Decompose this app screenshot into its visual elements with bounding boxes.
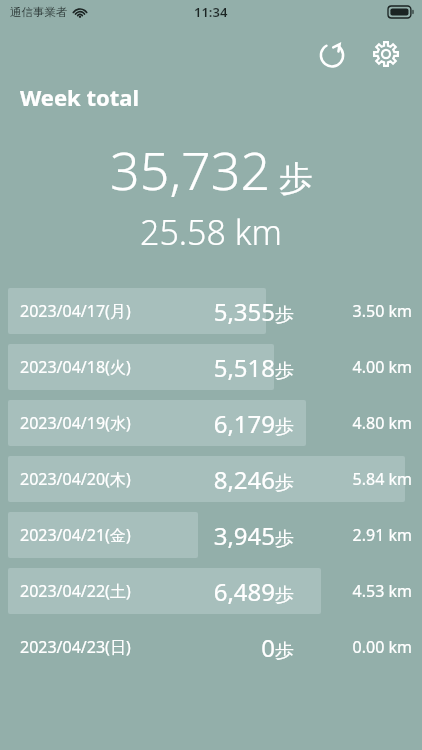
button[interactable]: 2023/04/17(月) [0, 283, 422, 339]
staticText: 2023/04/20(木) [20, 468, 131, 490]
button[interactable]: Refresh [308, 30, 356, 78]
button[interactable]: 2023/04/18(火) [0, 339, 422, 395]
staticText: 2.91 km [352, 524, 412, 546]
staticText: 歩 [275, 583, 294, 607]
button[interactable]: 2023/04/21(金) [0, 507, 422, 563]
staticText: 3.50 km [352, 300, 412, 322]
staticText: 0.00 km [352, 636, 412, 658]
staticText: 11:34 [194, 3, 228, 21]
staticText: 歩 [279, 157, 313, 200]
staticText: 6,179 [213, 407, 275, 440]
staticText: 4.53 km [352, 580, 412, 602]
staticText: 6,489 [213, 575, 275, 608]
button[interactable]: 2023/04/22(土) [0, 563, 422, 619]
staticText: 4.00 km [352, 356, 412, 378]
staticText: 歩 [275, 639, 294, 663]
staticText: 2023/04/23(日) [20, 636, 131, 658]
staticText: 2023/04/21(金) [20, 524, 131, 546]
staticText: 2023/04/17(月) [20, 300, 131, 322]
staticText: 4.80 km [352, 412, 412, 434]
button[interactable]: 2023/04/20(木) [0, 451, 422, 507]
staticText: 歩 [275, 527, 294, 551]
staticText: 5.84 km [352, 468, 412, 490]
staticText: 25.58 km [140, 209, 282, 255]
staticText: 8,246 [213, 463, 275, 496]
button[interactable]: 2023/04/19(水) [0, 395, 422, 451]
staticText: 2023/04/22(土) [20, 580, 131, 602]
staticText: 5,355 [213, 295, 275, 328]
staticText: 5,518 [213, 351, 275, 384]
staticText: 2023/04/18(火) [20, 356, 131, 378]
staticText: 0 [261, 631, 275, 664]
button[interactable]: 2023/04/23(日) [0, 619, 422, 675]
staticText: 通信事業者 [10, 5, 68, 19]
staticText: 2023/04/19(水) [20, 412, 131, 434]
staticText: 歩 [275, 471, 294, 495]
staticText: Week total [20, 82, 140, 112]
staticText: 3,945 [213, 519, 275, 552]
staticText: 歩 [275, 303, 294, 327]
staticText: 歩 [275, 415, 294, 439]
button[interactable]: Settings [362, 30, 410, 78]
staticText: 35,732 [110, 134, 271, 205]
staticText: 歩 [275, 359, 294, 383]
